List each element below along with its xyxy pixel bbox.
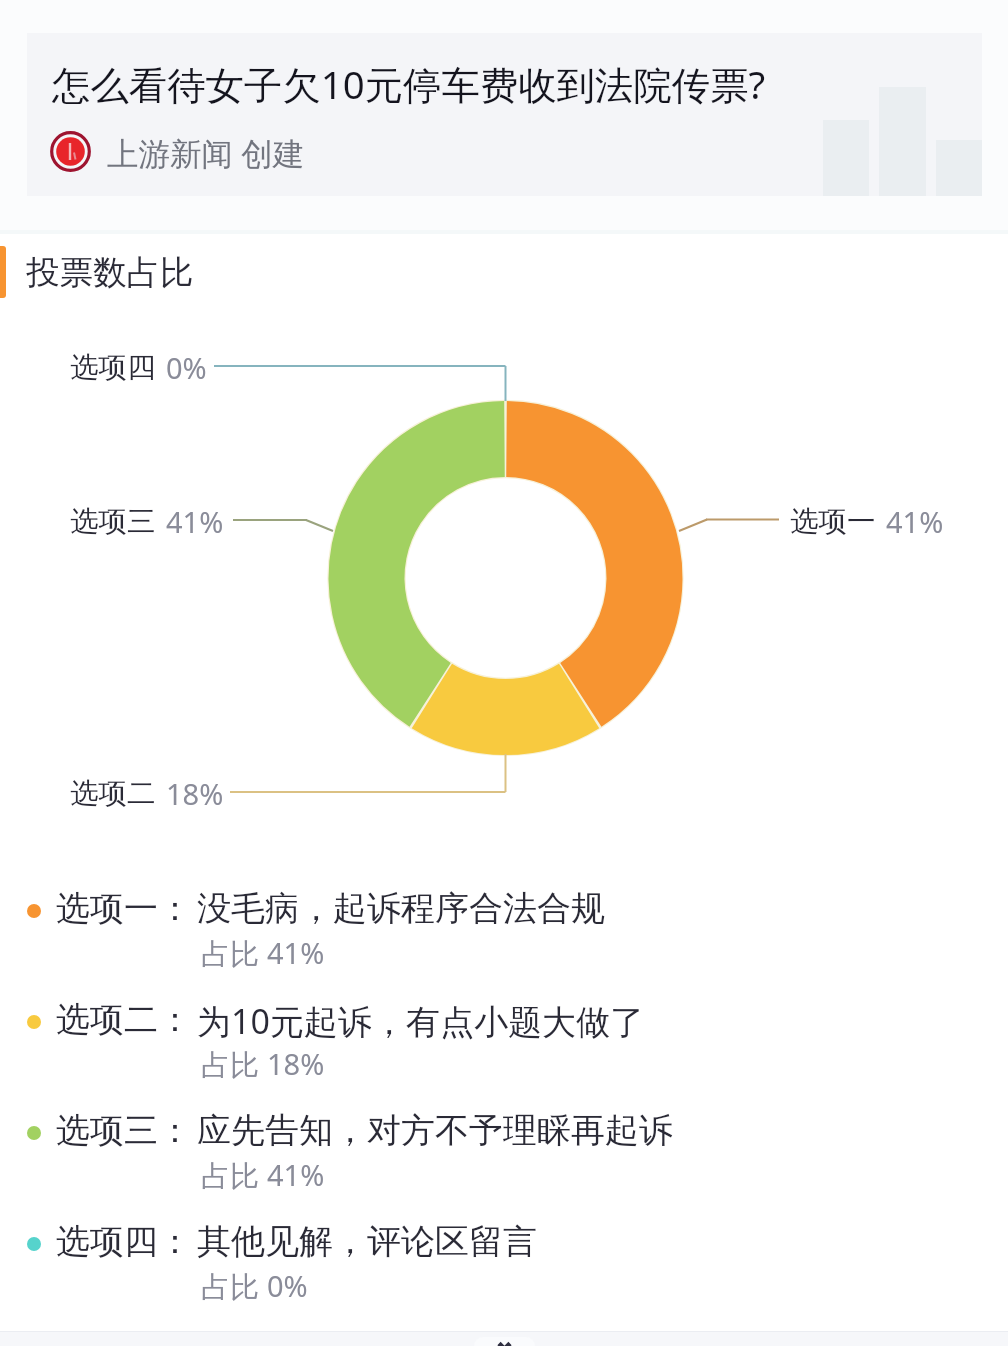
- button[interactable]: 选项二：: [0, 983, 1008, 1094]
- staticText: 0%: [267, 1266, 308, 1305]
- staticText: 选项三: [70, 504, 156, 540]
- staticText: 选项一: [790, 504, 876, 540]
- staticText: 18%: [267, 1044, 325, 1083]
- button[interactable]: 选项一: [790, 502, 944, 541]
- staticText: 0%: [166, 348, 207, 387]
- button[interactable]: 选项四：: [0, 1205, 1008, 1316]
- other: 上游新闻 avatar: [50, 131, 91, 172]
- staticText: 占比: [201, 933, 267, 973]
- button[interactable]: 选项二: [70, 774, 224, 813]
- staticText: 41%: [166, 502, 224, 541]
- staticText: 41%: [267, 933, 325, 972]
- staticText: 怎么看待女子欠10元停车费收到法院传票?: [52, 58, 766, 110]
- staticText: 上游新闻 创建: [107, 131, 305, 174]
- staticText: 41%: [886, 502, 944, 541]
- button[interactable]: 选项三: [70, 502, 224, 541]
- staticText: 占比: [201, 1155, 267, 1195]
- button[interactable]: 选项一：: [0, 872, 1008, 983]
- staticText: 选项四：: [56, 1220, 192, 1263]
- staticText: 投票数占比: [26, 252, 194, 294]
- staticText: 选项三：: [56, 1109, 192, 1152]
- staticText: 为10元起诉，有点小题大做了: [197, 998, 644, 1044]
- button[interactable]: 选项三：: [0, 1094, 1008, 1205]
- staticText: 18%: [166, 774, 224, 813]
- button[interactable]: 怎么看待女子欠10元停车费收到法院传票?: [0, 0, 1008, 230]
- staticText: 选项二：: [56, 998, 192, 1041]
- other: 投票数占比 donut chart: [0, 0, 1008, 1346]
- staticText: 占比: [201, 1044, 267, 1084]
- staticText: 没毛病，起诉程序合法合规: [197, 887, 605, 930]
- button[interactable]: 投票数占比: [0, 234, 1008, 310]
- staticText: 其他见解，评论区留言: [197, 1220, 537, 1263]
- staticText: 选项四: [70, 350, 156, 386]
- staticText: 41%: [267, 1155, 325, 1194]
- staticText: 选项二: [70, 776, 156, 812]
- staticText: 占比: [201, 1266, 267, 1306]
- staticText: 应先告知，对方不予理睬再起诉: [197, 1109, 673, 1152]
- button[interactable]: 选项四: [70, 348, 207, 387]
- staticText: 选项一：: [56, 887, 192, 930]
- button[interactable]: Collapse: [474, 1337, 535, 1346]
